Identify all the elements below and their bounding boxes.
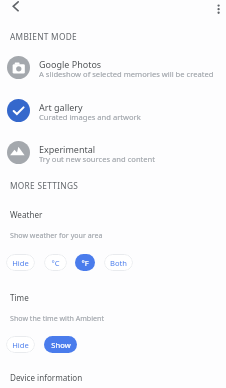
staticText: °F xyxy=(81,258,89,268)
staticText: Device information xyxy=(10,372,83,383)
button[interactable]: More options xyxy=(205,0,226,21)
button[interactable]: Back xyxy=(4,0,27,23)
staticText: Show xyxy=(51,340,71,350)
staticText: Time xyxy=(10,292,29,303)
staticText: AMBIENT MODE xyxy=(10,31,77,42)
staticText: MORE SETTINGS xyxy=(10,180,79,191)
button[interactable]: Both xyxy=(104,254,133,271)
button[interactable]: Experimental xyxy=(0,141,226,176)
staticText: A slideshow of selected memories will be… xyxy=(39,69,214,79)
button[interactable]: Google Photos xyxy=(0,56,226,91)
button[interactable]: Hide xyxy=(6,254,35,271)
staticText: Show the time with Ambient xyxy=(10,313,105,323)
staticText: Both xyxy=(110,258,127,268)
button[interactable]: Show xyxy=(44,336,77,353)
button[interactable]: °C xyxy=(44,254,67,271)
staticText: Curated images and artwork xyxy=(39,112,141,122)
staticText: Weather xyxy=(10,209,43,220)
staticText: Experimental xyxy=(39,143,96,155)
staticText: Google Photos xyxy=(39,58,102,70)
staticText: Hide xyxy=(12,340,29,350)
button[interactable]: Art gallery xyxy=(0,99,226,134)
staticText: Show weather for your area xyxy=(10,230,103,240)
button[interactable]: Hide xyxy=(6,336,35,353)
button[interactable]: °F xyxy=(75,254,95,271)
staticText: °C xyxy=(51,258,60,268)
staticText: Try out new sources and content xyxy=(39,154,156,164)
staticText: Hide xyxy=(12,258,29,268)
staticText: Art gallery xyxy=(39,101,83,113)
